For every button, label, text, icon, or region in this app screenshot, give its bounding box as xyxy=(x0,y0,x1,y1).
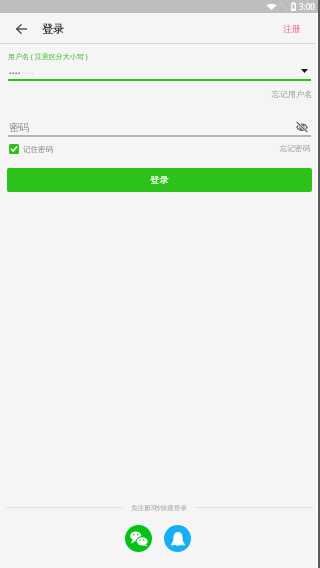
staticText: 登录 xyxy=(42,22,64,36)
staticText: 忘记用户名 xyxy=(272,89,312,99)
button[interactable]: QQ login xyxy=(164,525,191,552)
staticText: 忘记密码 xyxy=(280,144,310,153)
button[interactable]: 记住密码 xyxy=(9,144,53,154)
staticText: 3:00 xyxy=(299,1,315,12)
button[interactable]: 忘记密码 xyxy=(280,144,310,153)
button[interactable]: WeChat login xyxy=(125,525,152,552)
button[interactable]: Back xyxy=(6,14,36,44)
button[interactable]: Show username list xyxy=(296,63,312,79)
staticText: 记住密码 xyxy=(23,145,53,154)
staticText: 密码 xyxy=(9,121,29,134)
staticText: 注册 xyxy=(283,23,301,34)
staticText: 免注册3秒快速登录 xyxy=(131,503,187,512)
button[interactable]: Toggle password visibility xyxy=(293,118,310,135)
button[interactable]: 忘记用户名 xyxy=(272,89,312,99)
button[interactable]: 注册 xyxy=(274,17,320,40)
staticText: 用户名 ( 注意区分大小写 ) xyxy=(8,52,88,62)
staticText: 登录 xyxy=(150,174,169,186)
button[interactable]: 登录 xyxy=(7,168,312,192)
